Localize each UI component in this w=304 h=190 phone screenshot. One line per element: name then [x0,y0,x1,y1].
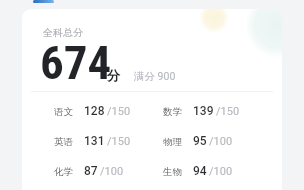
staticText: /100 [100,165,124,178]
staticText: 139 [193,104,214,118]
button[interactable]: 语文 [54,104,131,118]
staticText: /150 [107,135,131,148]
button[interactable]: 数学 [163,104,240,118]
staticText: 分 [107,67,120,83]
staticText: 物理 [163,136,182,148]
button[interactable]: Selected tab [33,0,54,3]
staticText: 英语 [54,136,73,148]
staticText: 128 [84,104,105,118]
staticText: 语文 [54,106,73,118]
staticText: 满分 900 [134,70,176,83]
staticText: /150 [107,105,131,118]
button[interactable]: 物理 [163,134,233,148]
staticText: 94 [193,164,207,178]
staticText: 生物 [163,166,182,178]
staticText: 674 [40,35,112,90]
staticText: 95 [193,134,207,148]
staticText: /100 [209,165,233,178]
button[interactable]: 英语 [54,134,131,148]
staticText: 化学 [54,166,73,178]
staticText: /150 [216,105,240,118]
staticText: 数学 [163,106,182,118]
staticText: 131 [84,134,105,148]
button[interactable]: 化学 [54,164,124,178]
staticText: 全科总分 [43,26,83,39]
button[interactable]: 生物 [163,164,233,178]
staticText: 87 [84,164,98,178]
staticText: /100 [209,135,233,148]
